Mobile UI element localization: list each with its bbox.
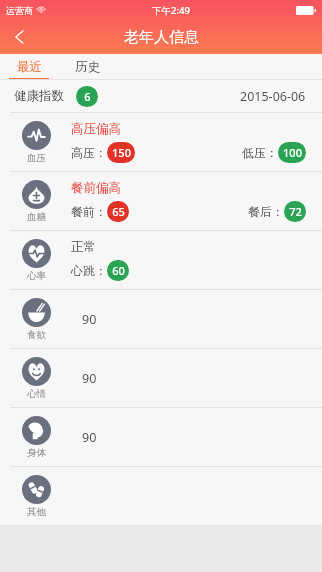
button[interactable]: 心率 xyxy=(0,231,322,289)
staticText: 72 xyxy=(289,204,302,219)
staticText: 60 xyxy=(112,263,125,278)
button[interactable]: Back xyxy=(0,20,40,54)
staticText: 150 xyxy=(112,145,131,160)
staticText: 身体 xyxy=(27,447,46,459)
staticText: 食欲 xyxy=(27,329,46,341)
staticText: 90 xyxy=(82,311,97,328)
button[interactable]: 历史 xyxy=(58,54,116,80)
staticText: 2015-06-06 xyxy=(240,88,306,105)
button[interactable]: 食欲 xyxy=(0,290,322,348)
staticText: 6 xyxy=(84,89,91,104)
button[interactable]: 血压 xyxy=(0,113,322,171)
staticText: 餐前： xyxy=(71,204,107,219)
staticText: 90 xyxy=(82,370,97,387)
staticText: 健康指数 xyxy=(14,88,64,104)
staticText: 下午2:49 xyxy=(152,4,190,17)
staticText: 血压 xyxy=(27,152,46,164)
staticText: 高压： xyxy=(71,145,107,160)
staticText: 高压偏高 xyxy=(71,121,121,137)
staticText: 正常 xyxy=(71,239,96,255)
staticText: 运营商 xyxy=(6,5,33,16)
staticText: 低压： xyxy=(242,145,278,160)
staticText: 血糖 xyxy=(27,211,46,223)
staticText: 老年人信息 xyxy=(124,28,199,47)
staticText: 最近 xyxy=(17,59,42,75)
staticText: 心率 xyxy=(27,270,46,282)
staticText: 餐后： xyxy=(248,204,284,219)
button[interactable]: 血糖 xyxy=(0,172,322,230)
staticText: 100 xyxy=(283,145,302,160)
button[interactable]: 健康指数 xyxy=(0,80,322,112)
staticText: 心跳： xyxy=(71,263,107,278)
staticText: 历史 xyxy=(75,59,100,75)
button[interactable]: 最近 xyxy=(0,54,58,80)
staticText: 65 xyxy=(112,204,125,219)
staticText: 其他 xyxy=(27,506,46,518)
staticText: 餐前偏高 xyxy=(71,180,121,196)
button[interactable]: 身体 xyxy=(0,408,322,466)
button[interactable]: 其他 xyxy=(0,467,322,525)
staticText: 心情 xyxy=(27,388,46,400)
button[interactable]: 心情 xyxy=(0,349,322,407)
staticText: 90 xyxy=(82,429,97,446)
